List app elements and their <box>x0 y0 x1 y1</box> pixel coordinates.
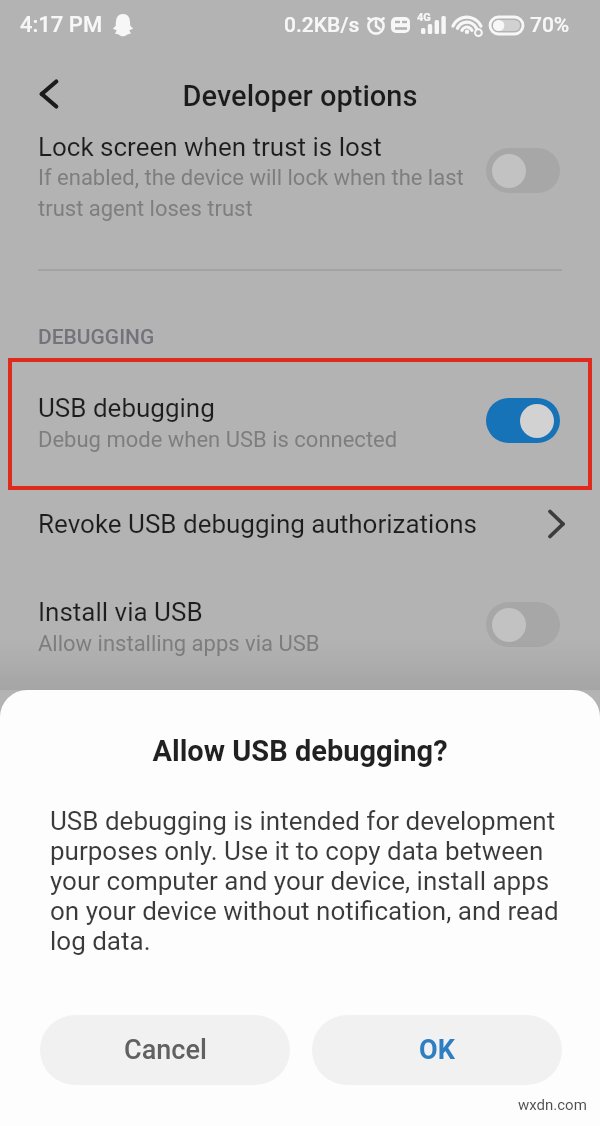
button[interactable] <box>486 398 560 443</box>
staticText: Allow installing apps via USB <box>38 631 320 657</box>
staticText: USB debugging is intended for developmen… <box>50 806 559 956</box>
staticText: Debug mode when USB is connected <box>38 427 398 453</box>
staticText: Revoke USB debugging authorizations <box>38 509 478 539</box>
staticText: USB debugging <box>38 393 215 423</box>
button[interactable]: OK <box>312 1015 562 1085</box>
staticText: 4G <box>417 11 431 24</box>
staticText: Developer options <box>0 79 600 113</box>
button[interactable] <box>36 80 62 108</box>
staticText: DEBUGGING <box>38 325 155 350</box>
button[interactable]: Lock screen when trust is lost <box>0 128 600 228</box>
button[interactable]: Cancel <box>40 1015 290 1085</box>
button[interactable]: Install via USB <box>0 592 600 662</box>
staticText: Allow USB debugging? <box>0 734 600 768</box>
button[interactable]: Revoke USB debugging authorizations <box>0 500 600 550</box>
button[interactable]: USB debugging <box>0 388 600 460</box>
staticText: Cancel <box>124 1034 207 1066</box>
staticText: 0.2KB/s <box>284 13 360 38</box>
button[interactable] <box>486 148 560 193</box>
staticText: Install via USB <box>38 597 203 627</box>
staticText: wxdn.com <box>518 1096 587 1114</box>
staticText: 70% <box>530 13 570 38</box>
staticText: If enabled, the device will lock when th… <box>38 165 464 221</box>
staticText: OK <box>419 1034 455 1066</box>
button[interactable] <box>486 602 560 647</box>
staticText: 4:17 PM <box>20 12 103 38</box>
staticText: Lock screen when trust is lost <box>38 132 382 162</box>
